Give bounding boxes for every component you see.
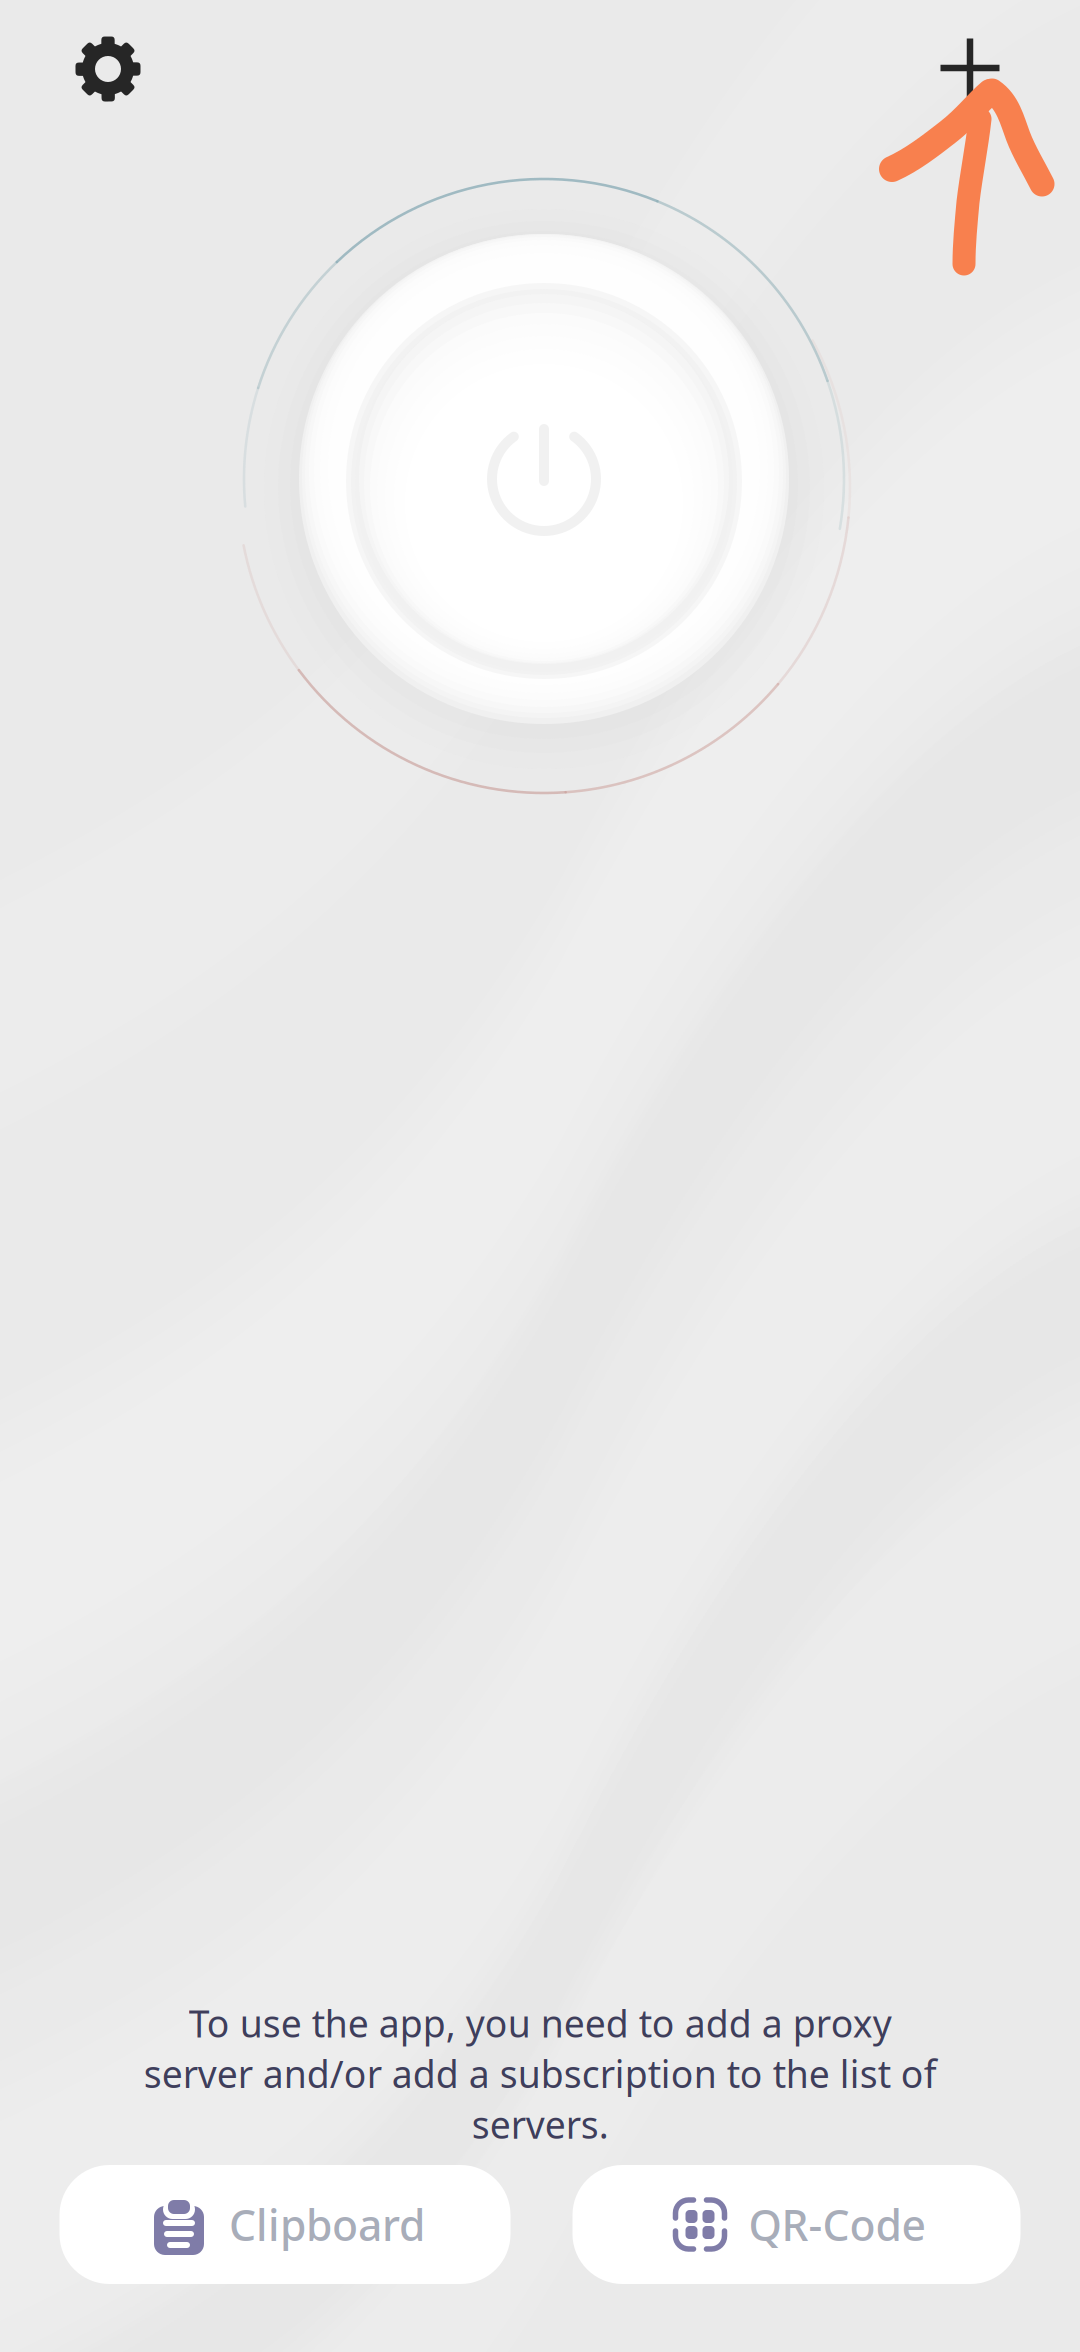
staticText: QR-Code: [748, 2196, 925, 2253]
staticText: To use the app, you need to add a proxy …: [143, 1998, 936, 2149]
button[interactable]: Add server: [910, 8, 1030, 128]
staticText: Clipboard: [229, 2196, 425, 2253]
button[interactable]: Clipboard: [59, 2165, 510, 2284]
button[interactable]: Settings: [42, 3, 174, 135]
button[interactable]: QR-Code: [572, 2165, 1020, 2284]
